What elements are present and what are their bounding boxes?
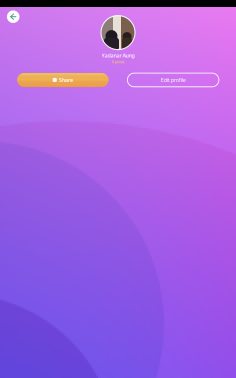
staticText: Yadanar Aung	[101, 52, 134, 59]
button[interactable]: Edit profile	[127, 73, 219, 87]
button[interactable]: Share	[17, 73, 109, 87]
staticText: Share	[59, 76, 73, 83]
staticText: 0 points	[112, 60, 124, 64]
staticText: Edit profile	[161, 76, 186, 83]
button[interactable]: Back	[7, 10, 19, 23]
